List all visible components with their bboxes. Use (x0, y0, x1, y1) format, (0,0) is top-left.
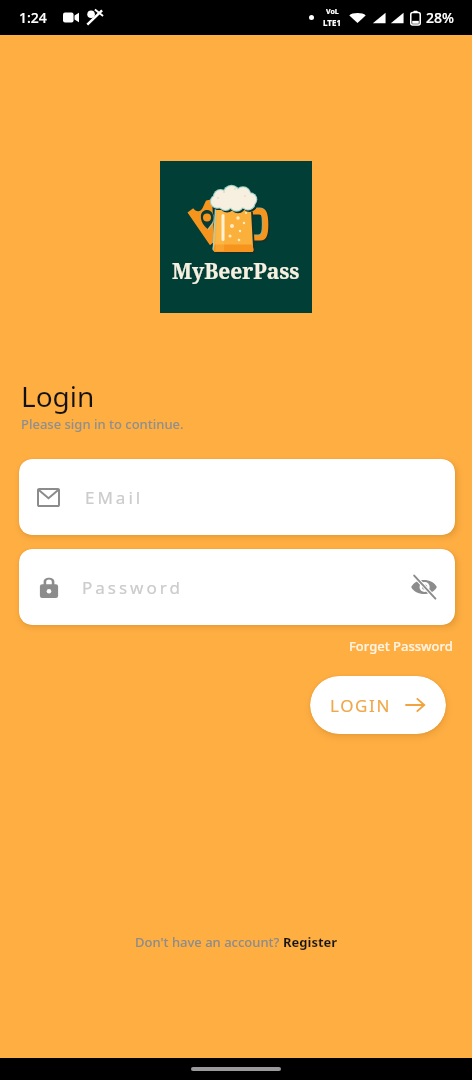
staticText: 28% (426, 8, 454, 27)
button[interactable]: Show password (406, 569, 442, 605)
staticText: VoL (326, 7, 339, 17)
button[interactable]: Forget Password (343, 627, 459, 665)
button[interactable]: EMail (19, 459, 455, 535)
button[interactable]: LOGIN (310, 676, 446, 734)
staticText: Login (21, 377, 95, 415)
staticText: Register (283, 933, 338, 951)
staticText: Don't have an account? (135, 933, 283, 951)
staticText: LOGIN (330, 694, 391, 717)
staticText: EMail (85, 486, 144, 509)
staticText: Please sign in to continue. (21, 415, 184, 433)
staticText: Password (82, 576, 183, 599)
staticText: LTE1 (323, 17, 341, 28)
staticText: Forget Password (349, 637, 453, 655)
button[interactable]: Don't have an account? (129, 927, 344, 957)
staticText: MyBeerPass (172, 257, 300, 286)
button[interactable]: Password (19, 549, 455, 625)
staticText: 1:24 (19, 8, 47, 27)
